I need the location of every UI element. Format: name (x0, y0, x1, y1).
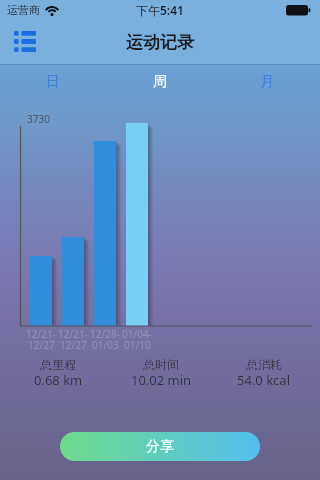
staticText: 12/27 (28, 338, 55, 349)
staticText: 01/04- (122, 327, 152, 338)
staticText: 12/21- (26, 327, 56, 338)
staticText: 12/21- (58, 327, 88, 338)
staticText: 54.0 kcal (237, 371, 291, 386)
staticText: 运动记录 (126, 32, 194, 53)
staticText: 01/10 (124, 338, 151, 349)
staticText: 日 (46, 73, 60, 91)
staticText: 月 (260, 73, 274, 91)
button[interactable]: 日 (0, 64, 106, 100)
staticText: 总时间 (143, 357, 179, 370)
staticText: 12/28- (90, 327, 120, 338)
staticText: 下午5:41 (136, 2, 184, 18)
button[interactable]: 周 (106, 64, 213, 100)
button[interactable]: 分享 (60, 432, 260, 461)
button[interactable] (8, 25, 42, 57)
staticText: 周 (153, 73, 167, 91)
staticText: 3730 (27, 112, 50, 125)
staticText: 0.68 km (34, 371, 83, 386)
button[interactable]: 月 (213, 64, 320, 100)
staticText: 总里程 (40, 357, 76, 370)
staticText: 01/03 (92, 338, 119, 349)
staticText: 总消耗 (246, 357, 282, 370)
staticText: 10.02 min (131, 371, 192, 386)
staticText: 分享 (146, 438, 174, 456)
staticText: 12/27 (60, 338, 87, 349)
staticText: 运营商 (7, 3, 40, 17)
